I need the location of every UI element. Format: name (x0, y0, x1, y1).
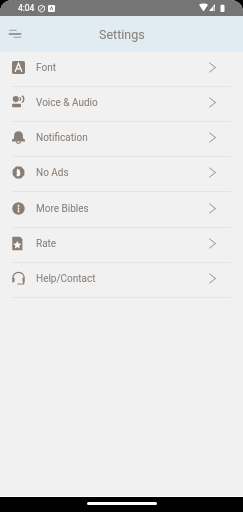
button[interactable]: More Bibles (0, 193, 243, 227)
button[interactable]: Notification (0, 122, 243, 156)
button[interactable]: Menu (2, 21, 28, 47)
button[interactable]: Voice & Audio (0, 87, 243, 121)
staticText: Help/Contact (36, 273, 96, 285)
staticText: Settings (99, 27, 145, 42)
staticText: Font (36, 62, 56, 74)
staticText: No Ads (36, 167, 69, 179)
button[interactable]: Font (0, 52, 243, 86)
staticText: Voice & Audio (36, 97, 98, 109)
button[interactable]: Help/Contact (0, 263, 243, 297)
staticText: Notification (36, 132, 88, 144)
staticText: More Bibles (36, 203, 89, 215)
staticText: Rate (36, 238, 57, 250)
button[interactable]: No Ads (0, 157, 243, 191)
staticText: 4:04 (18, 3, 35, 13)
button[interactable]: Rate (0, 228, 243, 262)
